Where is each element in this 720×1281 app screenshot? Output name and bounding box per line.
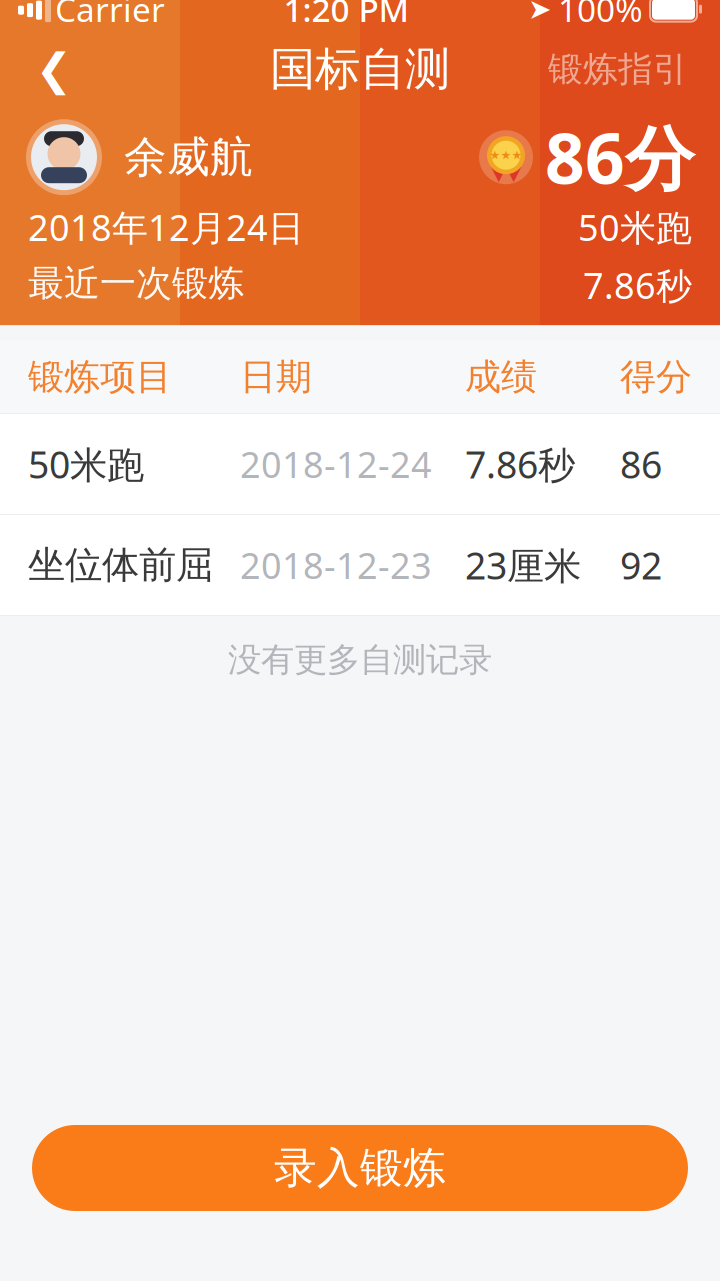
- staticText: ❮: [35, 44, 72, 94]
- staticText: 锻炼项目: [28, 355, 172, 399]
- staticText: 日期: [240, 355, 312, 399]
- staticText: 1:20 PM: [283, 0, 409, 31]
- staticText: Carrier: [55, 0, 165, 31]
- button[interactable]: 坐位体前屈: [0, 515, 720, 615]
- staticText: 国标自测: [270, 41, 450, 97]
- button[interactable]: 录入锻炼: [32, 1125, 688, 1211]
- staticText: 86: [620, 439, 662, 489]
- staticText: 86分: [545, 111, 694, 203]
- staticText: 2018-12-24: [240, 440, 432, 488]
- staticText: 7.86秒: [465, 439, 575, 489]
- staticText: 录入锻炼: [274, 1142, 446, 1194]
- staticText: 100%: [558, 0, 643, 31]
- staticText: 最近一次锻炼: [28, 261, 244, 305]
- staticText: 坐位体前屈: [28, 542, 213, 588]
- staticText: 92: [620, 540, 662, 590]
- staticText: 余威航: [124, 131, 253, 183]
- staticText: 50米跑: [28, 439, 144, 489]
- staticText: 7.86秒: [583, 261, 692, 309]
- staticText: ➤: [528, 0, 551, 25]
- staticText: 成绩: [465, 355, 537, 399]
- staticText: 50米跑: [578, 203, 692, 251]
- staticText: ★★★: [489, 148, 522, 162]
- staticText: 锻炼指引: [548, 48, 688, 90]
- button[interactable]: 锻炼指引: [534, 33, 702, 105]
- button[interactable]: 50米跑: [0, 414, 720, 514]
- staticText: 2018年12月24日: [28, 203, 304, 251]
- staticText: 2018-12-23: [240, 541, 432, 589]
- staticText: 23厘米: [465, 540, 581, 590]
- staticText: ▼▼: [491, 161, 521, 184]
- staticText: 得分: [620, 355, 692, 399]
- staticText: 没有更多自测记录: [228, 639, 492, 680]
- button[interactable]: Back: [18, 33, 90, 105]
